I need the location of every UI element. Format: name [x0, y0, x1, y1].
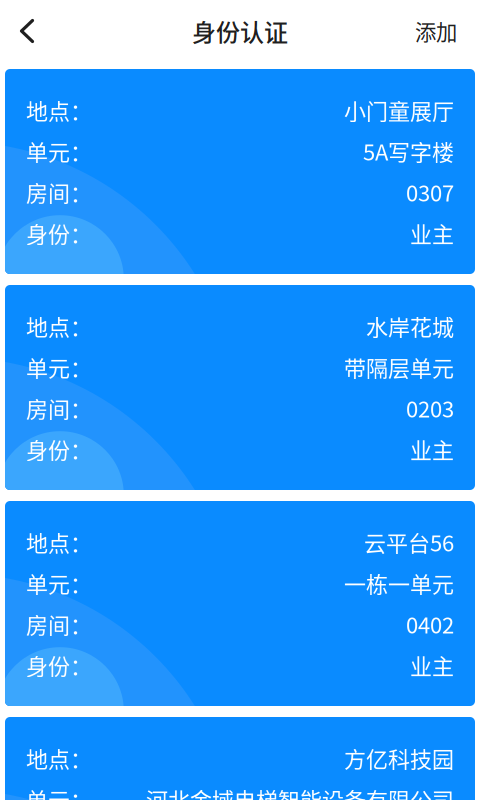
staticText: 添加	[415, 16, 457, 46]
staticText: 0203	[406, 392, 454, 424]
staticText: 身份认证	[192, 14, 288, 48]
button[interactable]: 地点：	[5, 501, 475, 706]
button[interactable]: 地点：	[5, 717, 475, 800]
staticText: 带隔层单元	[344, 351, 454, 383]
staticText: 单元：	[26, 135, 92, 167]
staticText: 单元：	[26, 783, 92, 800]
staticText: 水岸花城	[366, 310, 454, 342]
staticText: 单元：	[26, 567, 92, 599]
staticText: 5A写字楼	[363, 135, 454, 167]
staticText: 身份：	[26, 217, 92, 249]
staticText: 云平台56	[364, 526, 454, 558]
button[interactable]: 地点：	[5, 285, 475, 490]
staticText: 身份：	[26, 649, 92, 681]
staticText: 地点：	[26, 526, 92, 558]
button[interactable]: 添加	[404, 11, 480, 51]
staticText: 一栋一单元	[344, 567, 454, 599]
staticText: 0307	[406, 176, 454, 208]
staticText: 房间：	[26, 176, 92, 208]
staticText: 业主	[410, 433, 454, 465]
staticText: 业主	[410, 217, 454, 249]
staticText: 河北金域电梯智能设备有限公司	[146, 783, 454, 800]
staticText: 单元：	[26, 351, 92, 383]
staticText: 业主	[410, 649, 454, 681]
button[interactable]: 地点：	[5, 69, 475, 274]
staticText: 房间：	[26, 608, 92, 640]
staticText: 小门童展厅	[344, 94, 454, 126]
button[interactable]: 返回	[0, 11, 54, 51]
staticText: 地点：	[26, 742, 92, 774]
staticText: 身份：	[26, 433, 92, 465]
staticText: 房间：	[26, 392, 92, 424]
staticText: 0402	[406, 608, 454, 640]
staticText: 地点：	[26, 94, 92, 126]
staticText: 地点：	[26, 310, 92, 342]
staticText: 方亿科技园	[344, 742, 454, 774]
